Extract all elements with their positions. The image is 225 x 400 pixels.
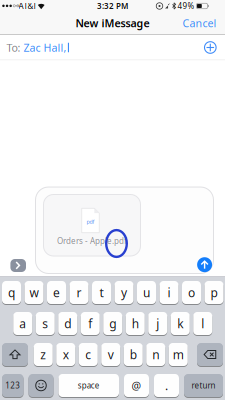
staticText: 123 bbox=[5, 380, 20, 391]
staticText: 3:32 PM bbox=[97, 1, 128, 11]
staticText: t bbox=[99, 284, 103, 300]
button[interactable]: 123 bbox=[2, 373, 23, 397]
button[interactable]: r bbox=[69, 280, 88, 304]
button[interactable]: e bbox=[47, 280, 66, 304]
button[interactable]: d bbox=[58, 311, 77, 335]
staticText: d bbox=[64, 315, 71, 331]
button[interactable]: l bbox=[193, 311, 212, 335]
staticText: c bbox=[85, 346, 91, 362]
staticText: @ bbox=[131, 378, 141, 393]
button[interactable]: Cancel bbox=[182, 16, 216, 30]
button[interactable]: Show apps bbox=[10, 259, 26, 272]
button[interactable]: n bbox=[146, 342, 165, 366]
staticText: h bbox=[132, 315, 139, 331]
button[interactable]: q bbox=[2, 280, 21, 304]
staticText: u bbox=[143, 284, 150, 300]
button[interactable]: p bbox=[204, 280, 223, 304]
button[interactable]: i bbox=[159, 280, 178, 304]
button[interactable]: Send bbox=[197, 257, 212, 272]
button[interactable]: return bbox=[184, 373, 223, 397]
staticText: l bbox=[201, 315, 204, 331]
staticText: Orders - Apple.pdf bbox=[57, 236, 127, 246]
staticText: r bbox=[76, 284, 81, 300]
staticText: z bbox=[40, 346, 46, 362]
staticText: To: bbox=[6, 40, 20, 55]
staticText: p bbox=[210, 284, 217, 300]
staticText: n bbox=[152, 346, 159, 362]
staticText: b bbox=[130, 346, 137, 362]
button[interactable]: m bbox=[169, 342, 188, 366]
button[interactable]: a bbox=[13, 311, 32, 335]
button[interactable]: o bbox=[182, 280, 201, 304]
staticText: return bbox=[191, 380, 215, 391]
staticText: f bbox=[88, 315, 92, 331]
staticText: AT&T bbox=[18, 1, 36, 11]
staticText: o bbox=[188, 284, 195, 300]
button[interactable]: t bbox=[92, 280, 111, 304]
button[interactable]: Shift bbox=[2, 342, 28, 366]
button[interactable]: u bbox=[137, 280, 156, 304]
button[interactable]: v bbox=[101, 342, 120, 366]
button[interactable]: k bbox=[171, 311, 190, 335]
button[interactable]: j bbox=[148, 311, 167, 335]
staticText: . bbox=[165, 377, 168, 393]
button[interactable]: PDF attachment Orders - Apple.pdf bbox=[43, 194, 140, 256]
staticText: v bbox=[108, 346, 114, 362]
button[interactable]: c bbox=[79, 342, 98, 366]
button[interactable]: Delete bbox=[197, 342, 223, 366]
staticText: i bbox=[167, 284, 170, 300]
button[interactable]: @ bbox=[124, 373, 149, 397]
button[interactable]: g bbox=[103, 311, 122, 335]
button[interactable]: y bbox=[114, 280, 133, 304]
staticText: k bbox=[177, 315, 183, 331]
staticText: New iMessage bbox=[75, 16, 149, 30]
staticText: m bbox=[173, 346, 184, 362]
staticText: e bbox=[53, 284, 60, 300]
button[interactable]: f bbox=[81, 311, 100, 335]
staticText: j bbox=[156, 315, 159, 331]
button[interactable]: space bbox=[58, 373, 119, 397]
staticText: q bbox=[8, 284, 15, 300]
staticText: s bbox=[42, 315, 48, 331]
staticText: g bbox=[109, 315, 116, 331]
button[interactable]: x bbox=[56, 342, 75, 366]
button[interactable]: w bbox=[24, 280, 43, 304]
button[interactable]: Emoji bbox=[28, 373, 53, 397]
staticText: w bbox=[29, 284, 38, 300]
staticText: Zac Hall, bbox=[20, 40, 66, 55]
staticText: y bbox=[121, 284, 127, 300]
staticText: x bbox=[63, 346, 69, 362]
button[interactable]: Add Contact bbox=[203, 40, 217, 54]
staticText: space bbox=[78, 380, 100, 391]
staticText: pdf bbox=[86, 218, 94, 225]
button[interactable]: . bbox=[154, 373, 179, 397]
staticText: 49% bbox=[177, 1, 194, 11]
button[interactable]: b bbox=[124, 342, 143, 366]
staticText: Cancel bbox=[182, 16, 216, 30]
button[interactable]: h bbox=[126, 311, 145, 335]
button[interactable]: z bbox=[34, 342, 53, 366]
staticText: a bbox=[19, 315, 26, 331]
button[interactable]: s bbox=[36, 311, 55, 335]
